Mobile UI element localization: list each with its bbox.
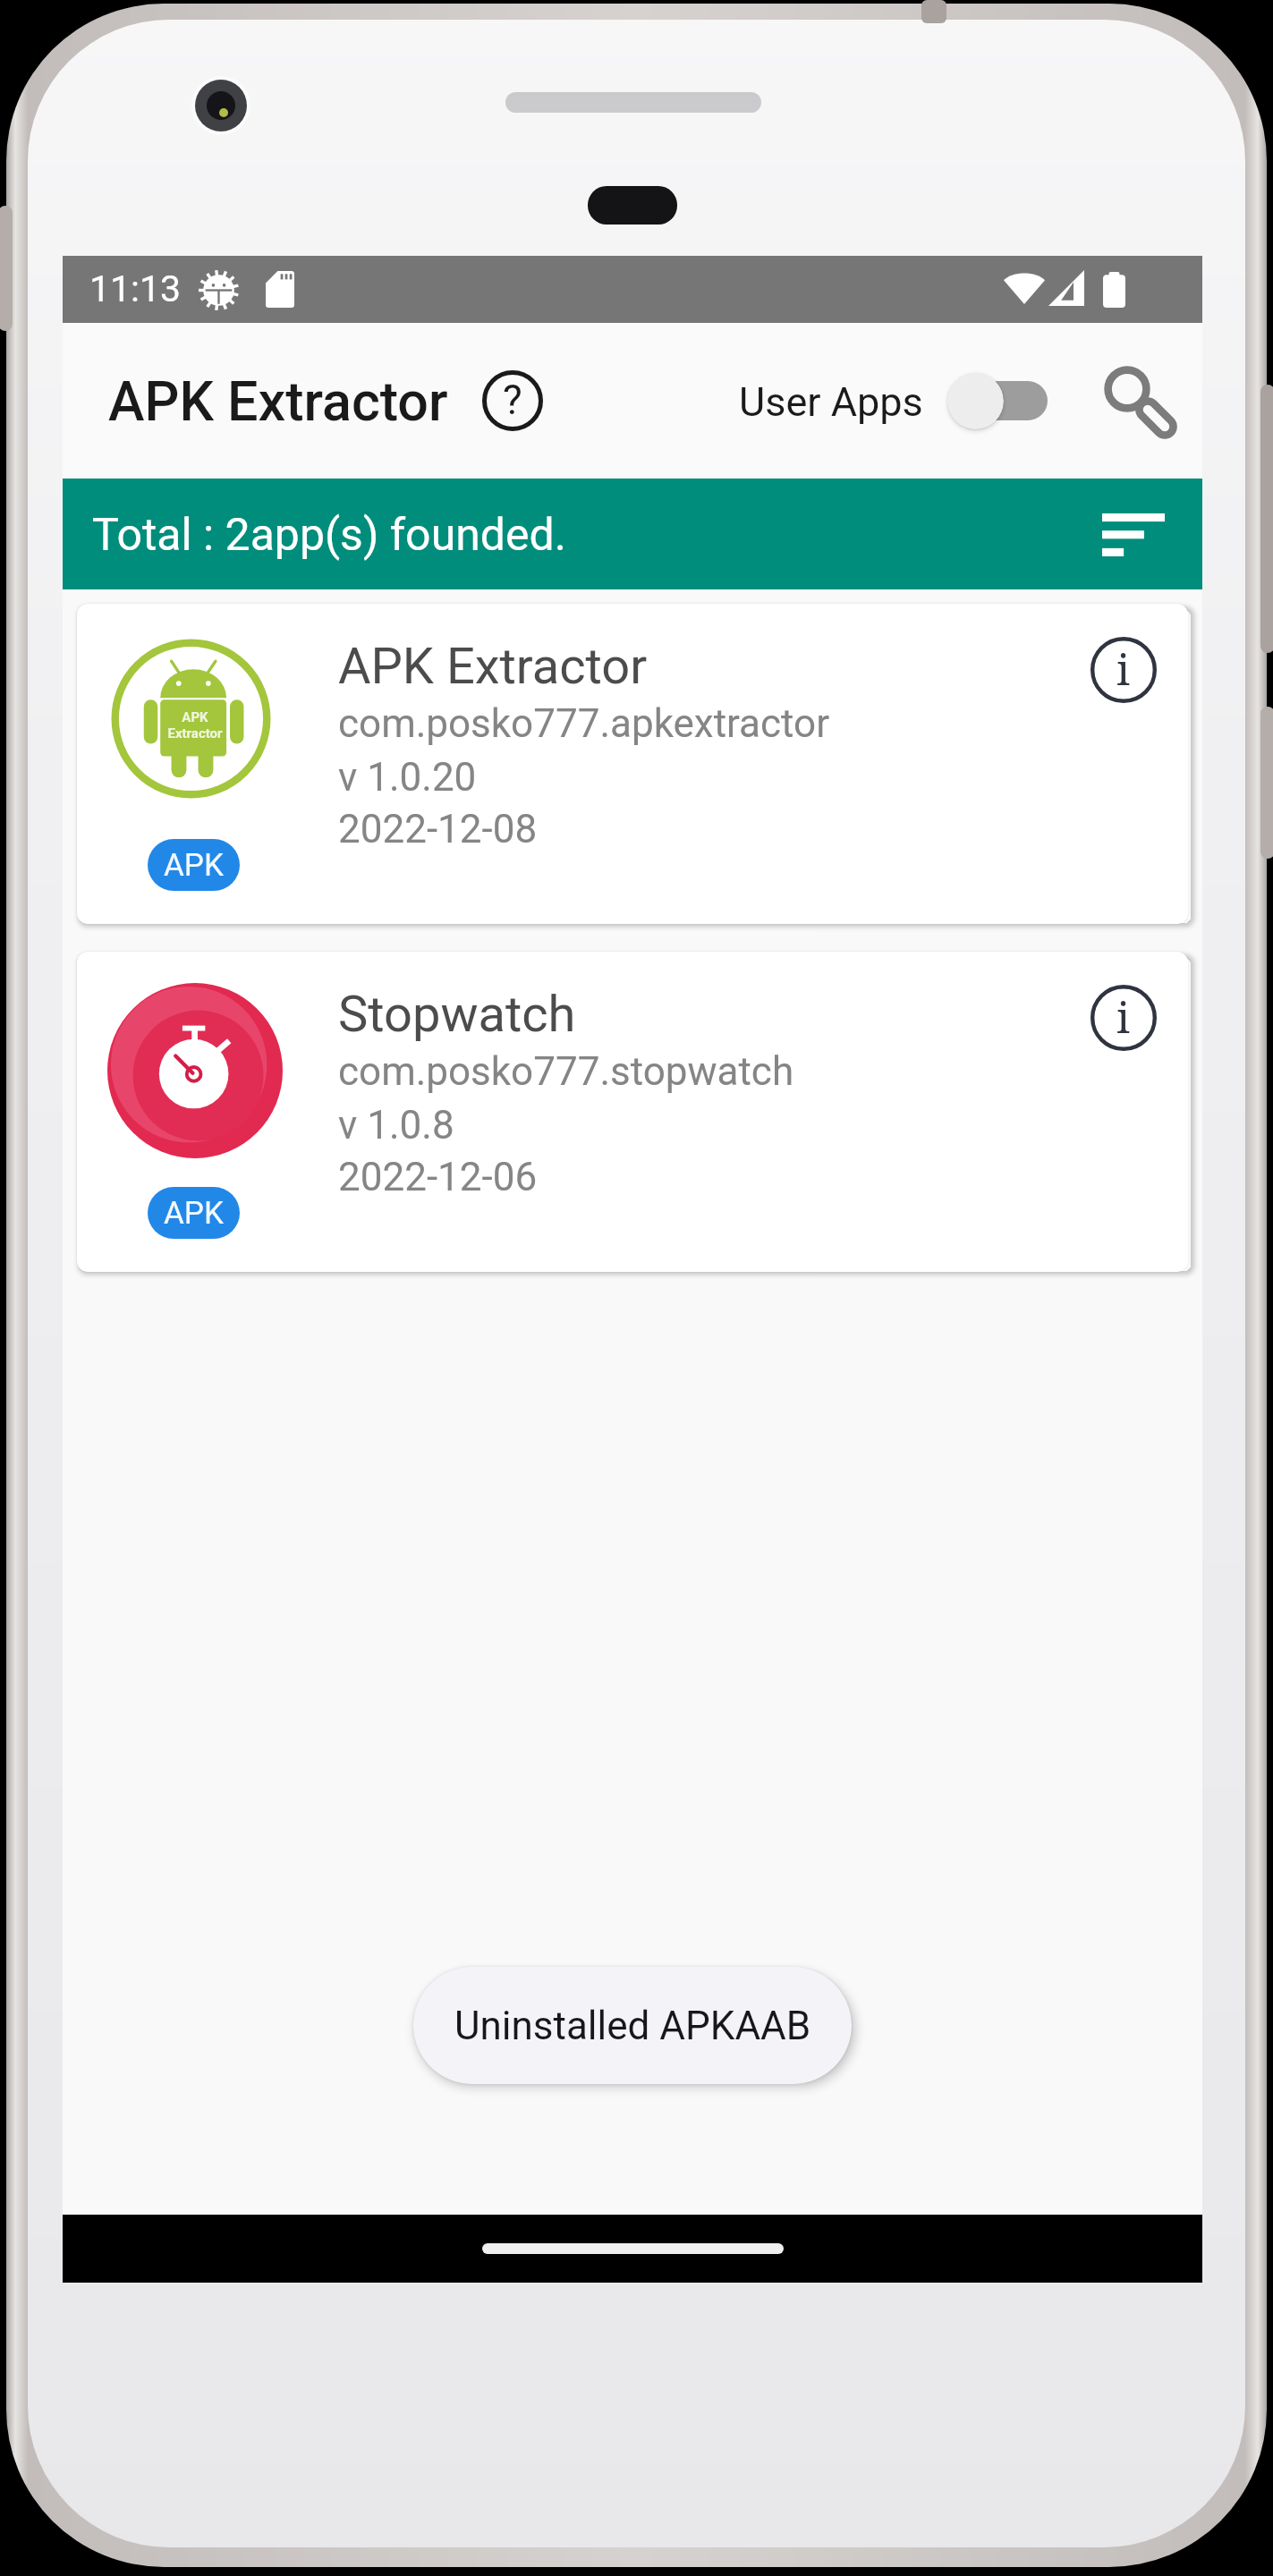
staticText: com.posko777.stopwatch xyxy=(338,1048,794,1095)
staticText: APK xyxy=(182,709,208,725)
staticText: APK xyxy=(164,1195,224,1232)
staticText: v 1.0.20 xyxy=(338,754,477,801)
button[interactable]: Help xyxy=(460,348,565,453)
staticText: i xyxy=(1116,988,1131,1046)
staticText: APK Extractor xyxy=(338,637,648,696)
staticText: v 1.0.8 xyxy=(338,1102,454,1148)
button[interactable]: Sort xyxy=(1084,485,1183,583)
button[interactable]: App info xyxy=(1076,970,1171,1065)
staticText: 2022-12-08 xyxy=(338,806,538,852)
button[interactable]: Search xyxy=(1077,346,1193,455)
staticText: com.posko777.apkextractor xyxy=(338,700,830,747)
staticText: APK xyxy=(164,847,224,884)
button[interactable]: APK xyxy=(77,952,1188,1272)
staticText: Uninstalled APKAAB xyxy=(454,2003,811,2049)
button[interactable]: Toggle user apps xyxy=(946,354,1062,447)
staticText: ? xyxy=(503,376,522,424)
staticText: APK Extractor xyxy=(108,369,448,433)
button[interactable]: App info xyxy=(1076,623,1171,717)
staticText: Stopwatch xyxy=(338,985,576,1044)
staticText: 11:13 xyxy=(89,267,182,310)
staticText: 2022-12-06 xyxy=(338,1154,538,1200)
staticText: User Apps xyxy=(739,378,923,426)
staticText: Total : 2app(s) founded. xyxy=(92,509,566,562)
staticText: Extractor xyxy=(167,725,223,741)
button[interactable]: APK xyxy=(77,604,1188,924)
staticText: i xyxy=(1116,640,1131,698)
